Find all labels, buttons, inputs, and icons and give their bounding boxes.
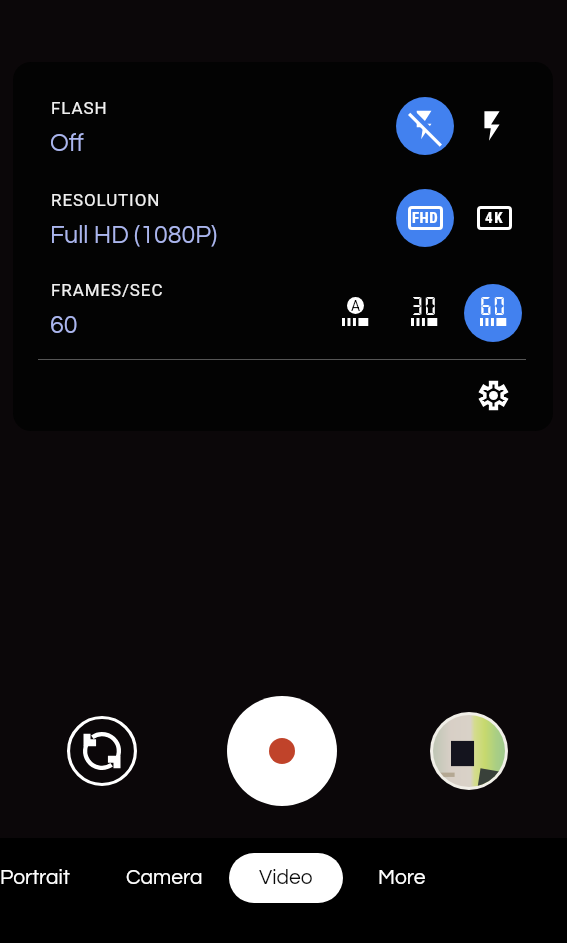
- button[interactable]: Record video: [227, 696, 337, 806]
- staticText: Video: [259, 867, 313, 889]
- button[interactable]: Flash off: [396, 97, 454, 155]
- staticText: A: [351, 298, 361, 314]
- staticText: FHD: [412, 209, 439, 227]
- button[interactable]: Switch camera: [65, 714, 139, 788]
- staticText: FRAMES/SEC: [51, 280, 164, 300]
- button[interactable]: More: [364, 853, 440, 903]
- staticText: 60: [50, 312, 78, 338]
- button[interactable]: Auto frames per second: [326, 284, 384, 342]
- staticText: More: [378, 867, 426, 889]
- button[interactable]: 4K: [465, 189, 523, 247]
- staticText: 60: [479, 294, 507, 316]
- staticText: Camera: [126, 867, 203, 889]
- button[interactable]: Flash on: [463, 97, 521, 155]
- button[interactable]: Settings: [469, 371, 517, 419]
- button[interactable]: 60 frames per second: [464, 284, 522, 342]
- staticText: 4K: [485, 209, 505, 227]
- staticText: 30: [410, 294, 438, 316]
- staticText: RESOLUTION: [51, 190, 161, 210]
- button[interactable]: Camera: [112, 853, 217, 903]
- button[interactable]: Portrait: [0, 853, 84, 903]
- staticText: Off: [50, 130, 84, 156]
- button[interactable]: Full HD: [396, 189, 454, 247]
- staticText: Full HD (1080P): [50, 222, 218, 248]
- staticText: FLASH: [51, 98, 108, 118]
- button[interactable]: Open gallery: [433, 715, 505, 787]
- button[interactable]: Video: [229, 853, 343, 903]
- staticText: Portrait: [0, 867, 70, 889]
- button[interactable]: 30 frames per second: [395, 284, 453, 342]
